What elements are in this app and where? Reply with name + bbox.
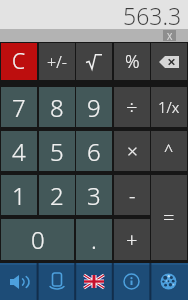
button[interactable]: C <box>1 43 37 80</box>
button[interactable] <box>151 43 187 80</box>
staticText: 3 <box>87 179 101 212</box>
staticText: 8 <box>50 91 64 124</box>
button[interactable] <box>76 43 112 80</box>
button[interactable]: . <box>76 219 112 260</box>
button[interactable]: + <box>114 219 150 260</box>
staticText: 0 <box>31 223 45 256</box>
button[interactable]: 1 <box>1 175 37 215</box>
staticText: 4 <box>12 135 26 168</box>
staticText: 5 <box>50 135 64 168</box>
button[interactable] <box>38 263 75 300</box>
button[interactable]: = <box>151 175 187 260</box>
staticText: + <box>126 226 138 253</box>
button[interactable]: ^ <box>151 131 187 171</box>
staticText: 7 <box>12 91 26 124</box>
staticText: × <box>127 138 138 164</box>
button[interactable]: 0 <box>1 219 74 260</box>
staticText: % <box>125 49 140 74</box>
staticText: . <box>91 223 97 256</box>
staticText: 1 <box>12 179 26 212</box>
button[interactable]: 2 <box>39 175 75 215</box>
button[interactable] <box>75 263 112 300</box>
staticText: - <box>129 182 136 209</box>
button[interactable] <box>150 263 187 300</box>
staticText: X <box>167 30 173 41</box>
staticText: +/- <box>47 51 67 73</box>
staticText: = <box>163 204 175 231</box>
staticText: C <box>12 47 26 76</box>
staticText: 1/x <box>158 97 180 117</box>
button[interactable] <box>113 263 150 300</box>
staticText: ÷ <box>126 94 138 121</box>
staticText: 9 <box>87 91 101 124</box>
staticText: 563.3 <box>123 0 182 29</box>
button[interactable]: 1/x <box>151 87 187 127</box>
button[interactable]: X <box>163 30 176 41</box>
button[interactable]: - <box>114 175 150 215</box>
button[interactable]: 8 <box>39 87 75 127</box>
button[interactable]: × <box>114 131 150 171</box>
button[interactable]: 5 <box>39 131 75 171</box>
button[interactable]: % <box>114 43 150 80</box>
button[interactable]: 7 <box>1 87 37 127</box>
button[interactable] <box>0 263 37 300</box>
staticText: ^ <box>164 140 174 162</box>
button[interactable]: 3 <box>76 175 112 215</box>
button[interactable]: 4 <box>1 131 37 171</box>
button[interactable]: +/- <box>39 43 75 80</box>
button[interactable]: 6 <box>76 131 112 171</box>
staticText: 2 <box>50 179 64 212</box>
button[interactable]: 9 <box>76 87 112 127</box>
button[interactable]: ÷ <box>114 87 150 127</box>
staticText: 6 <box>87 135 101 168</box>
